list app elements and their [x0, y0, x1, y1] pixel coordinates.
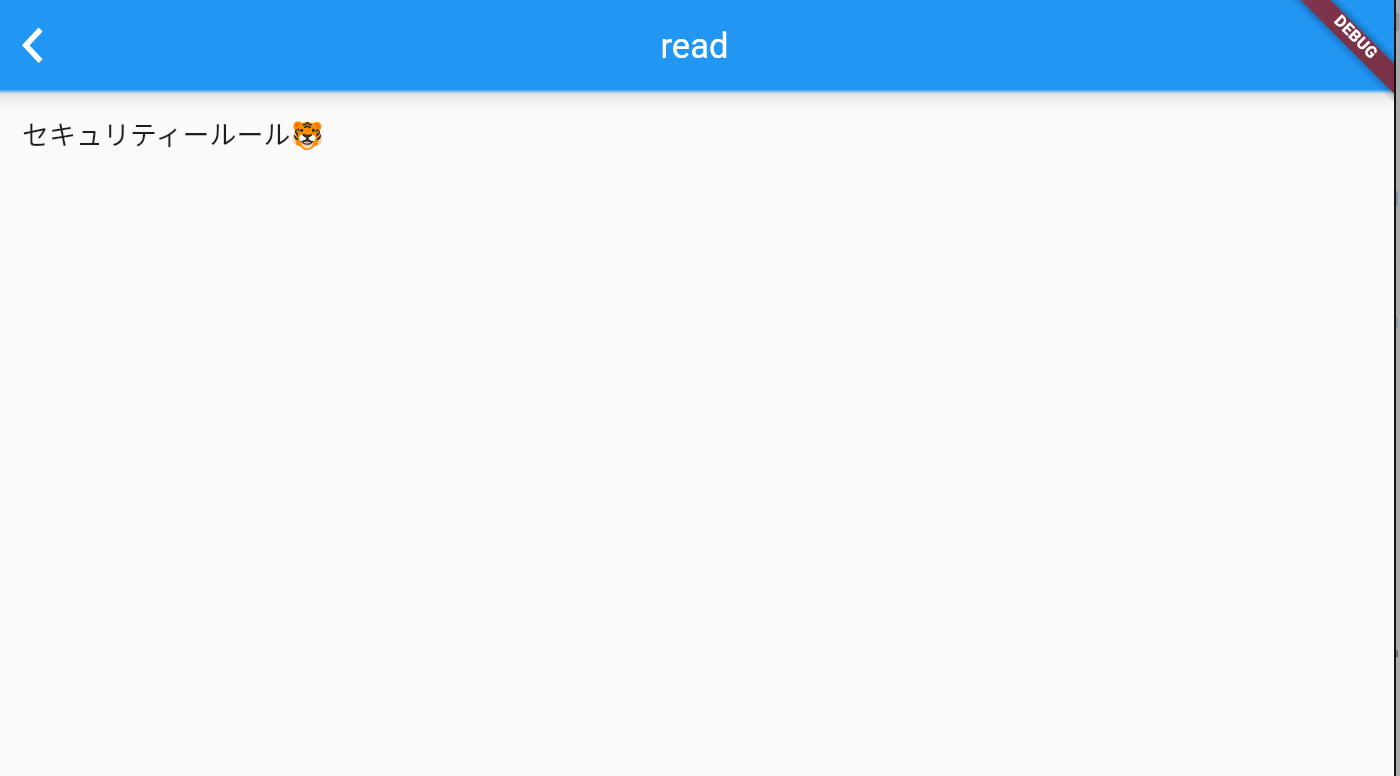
staticText: セキュリティールール🐯 [22, 114, 324, 153]
button[interactable]: Back [0, 0, 64, 92]
staticText: read [660, 26, 729, 67]
